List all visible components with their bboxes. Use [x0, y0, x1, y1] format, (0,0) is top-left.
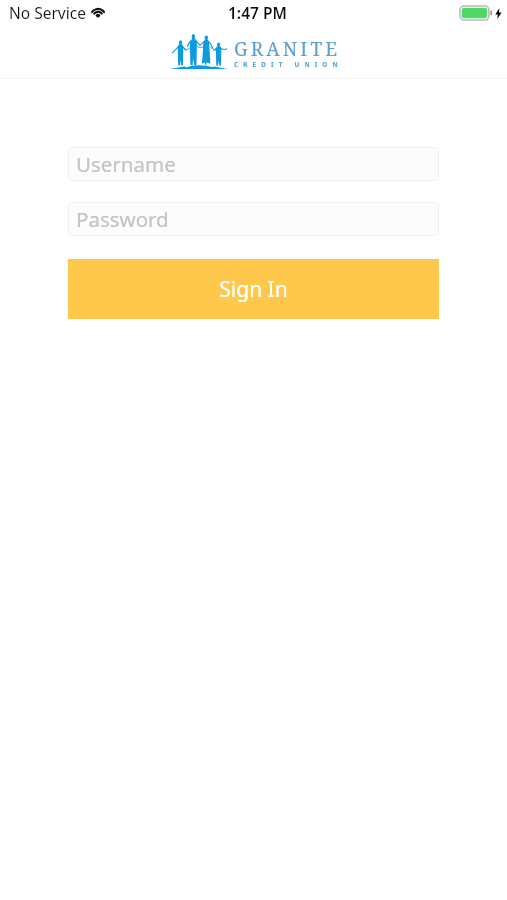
- staticText: Username: [76, 150, 176, 178]
- other: Battery full: [460, 6, 492, 20]
- staticText: CREDIT UNION: [234, 60, 343, 69]
- other: Granite Credit Union logo: [171, 34, 227, 69]
- button[interactable]: Username: [68, 147, 439, 181]
- button[interactable]: Sign In: [68, 259, 439, 319]
- staticText: 1:47 PM: [228, 2, 287, 23]
- staticText: Sign In: [219, 275, 288, 304]
- staticText: No Service: [9, 2, 86, 23]
- staticText: GRANITE: [234, 36, 341, 62]
- staticText: Password: [76, 205, 169, 233]
- button[interactable]: Password: [68, 202, 439, 236]
- other: Charging: [495, 8, 502, 19]
- other: Wi-Fi signal: [90, 5, 106, 16]
